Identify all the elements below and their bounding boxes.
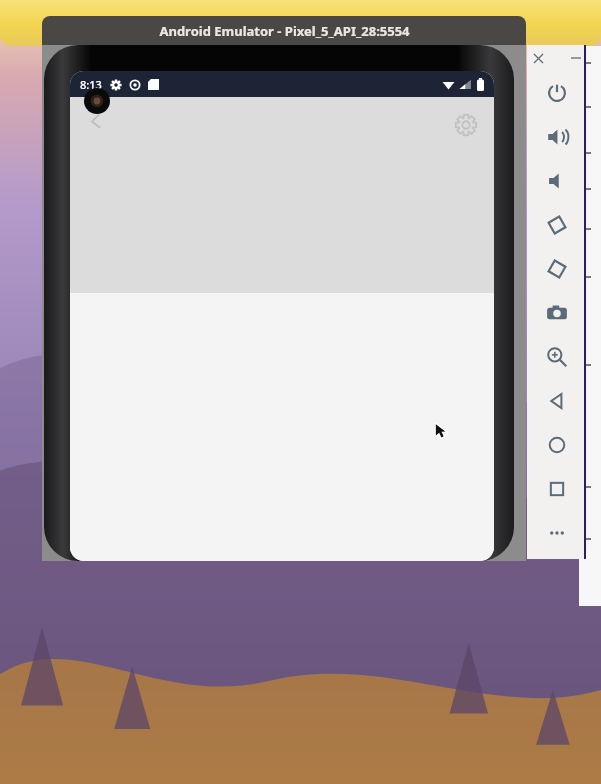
button[interactable]: Volume down	[535, 159, 579, 203]
button[interactable]: Take screenshot	[535, 291, 579, 335]
button[interactable]: Rotate right	[535, 247, 579, 291]
button[interactable]: Power	[535, 71, 579, 115]
button[interactable]: Minimize	[565, 47, 586, 69]
staticText: Android Emulator - Pixel_5_API_28:5554	[159, 22, 410, 40]
button[interactable]: Home	[535, 423, 579, 467]
button[interactable]: Back	[535, 379, 579, 423]
button[interactable]: Volume up	[535, 115, 579, 159]
button[interactable]: Recent apps	[535, 467, 579, 511]
staticText: 8:13	[80, 77, 102, 92]
button[interactable]: Settings	[446, 105, 486, 145]
button[interactable]: More	[535, 511, 579, 555]
button[interactable]: Zoom	[535, 335, 579, 379]
button[interactable]: Rotate left	[535, 203, 579, 247]
button[interactable]: Back	[76, 101, 116, 141]
button[interactable]: Close	[527, 47, 549, 69]
